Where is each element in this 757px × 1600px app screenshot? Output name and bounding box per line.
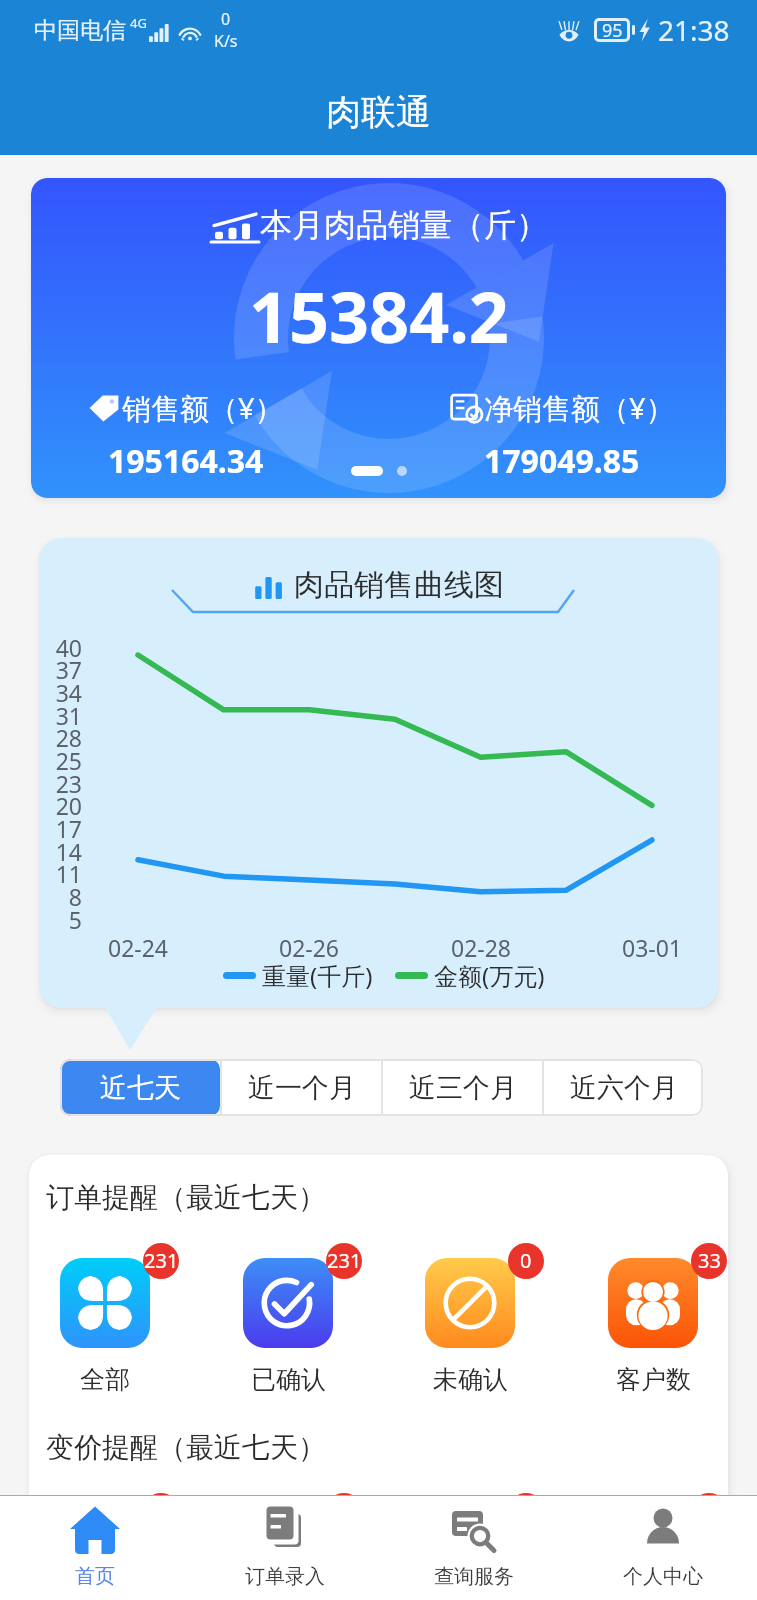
- staticText: 231: [144, 1247, 179, 1274]
- staticText: 订单提醒（最近七天）: [46, 1180, 326, 1215]
- button[interactable]: 订单录入: [190, 1496, 379, 1600]
- staticText: 21:38: [658, 11, 730, 49]
- staticText: 02-26: [249, 932, 369, 963]
- staticText: 全部: [80, 1364, 130, 1395]
- staticText: 销售额（¥）: [122, 388, 284, 428]
- button[interactable]: 近六个月: [544, 1059, 703, 1116]
- button[interactable]: 首页: [0, 1496, 190, 1600]
- staticText: 179049.85: [484, 439, 640, 483]
- staticText: 23: [39, 768, 82, 799]
- button[interactable]: 近七天: [60, 1059, 220, 1116]
- button[interactable]: 33: [583, 1258, 723, 1395]
- staticText: 28: [39, 722, 82, 753]
- staticText: 40: [39, 632, 82, 663]
- staticText: 近三个月: [409, 1071, 517, 1105]
- button[interactable]: 231: [218, 1258, 358, 1395]
- staticText: 8: [39, 881, 82, 912]
- staticText: 已确认: [251, 1364, 326, 1395]
- staticText: 未确认: [433, 1364, 508, 1395]
- staticText: 中国电信: [34, 16, 126, 45]
- button[interactable]: 231: [35, 1508, 175, 1600]
- staticText: 订单录入: [245, 1564, 325, 1589]
- staticText: 02-28: [421, 932, 541, 963]
- staticText: 近七天: [100, 1071, 181, 1105]
- staticText: 25: [39, 745, 82, 776]
- button[interactable]: 个人中心: [568, 1496, 757, 1600]
- staticText: 变价提醒（最近七天）: [46, 1430, 326, 1465]
- staticText: 5: [39, 904, 82, 935]
- staticText: 20: [39, 790, 82, 821]
- staticText: 14: [39, 836, 82, 867]
- staticText: 4G: [130, 14, 147, 32]
- staticText: 15384.2: [249, 268, 509, 363]
- button[interactable]: 本月肉品销量（斤）: [31, 178, 726, 498]
- staticText: 0: [520, 1247, 532, 1274]
- staticText: 17: [39, 813, 82, 844]
- staticText: 02-24: [78, 932, 198, 963]
- staticText: 肉联通: [326, 90, 431, 134]
- button[interactable]: 0: [400, 1258, 540, 1395]
- staticText: 近六个月: [570, 1071, 678, 1105]
- staticText: 231: [327, 1247, 362, 1274]
- staticText: 首页: [75, 1564, 115, 1589]
- button[interactable]: 33: [583, 1508, 723, 1600]
- staticText: 客户数: [616, 1364, 691, 1395]
- button[interactable]: 231: [218, 1508, 358, 1600]
- staticText: 31: [39, 700, 82, 731]
- staticText: 34: [39, 677, 82, 708]
- staticText: 肉品销售曲线图: [294, 566, 504, 604]
- staticText: 0: [221, 8, 231, 30]
- staticText: 33: [698, 1247, 721, 1274]
- staticText: 查询服务: [434, 1564, 514, 1589]
- staticText: 个人中心: [623, 1564, 703, 1589]
- staticText: K/s: [214, 30, 238, 52]
- staticText: 95: [602, 18, 623, 42]
- button[interactable]: 0: [400, 1508, 540, 1600]
- staticText: 11: [39, 858, 82, 889]
- staticText: 重量(千斤): [262, 959, 373, 992]
- staticText: 净销售额（¥）: [484, 388, 675, 428]
- button[interactable]: 近三个月: [383, 1059, 542, 1116]
- staticText: 本月肉品销量（斤）: [260, 205, 548, 245]
- staticText: 195164.34: [108, 439, 264, 483]
- button[interactable]: 231: [35, 1258, 175, 1395]
- staticText: 03-01: [592, 932, 712, 963]
- staticText: 近一个月: [248, 1071, 356, 1105]
- button[interactable]: 查询服务: [379, 1496, 568, 1600]
- staticText: 37: [39, 654, 82, 685]
- button[interactable]: 近一个月: [222, 1059, 381, 1116]
- staticText: 金额(万元): [434, 959, 545, 992]
